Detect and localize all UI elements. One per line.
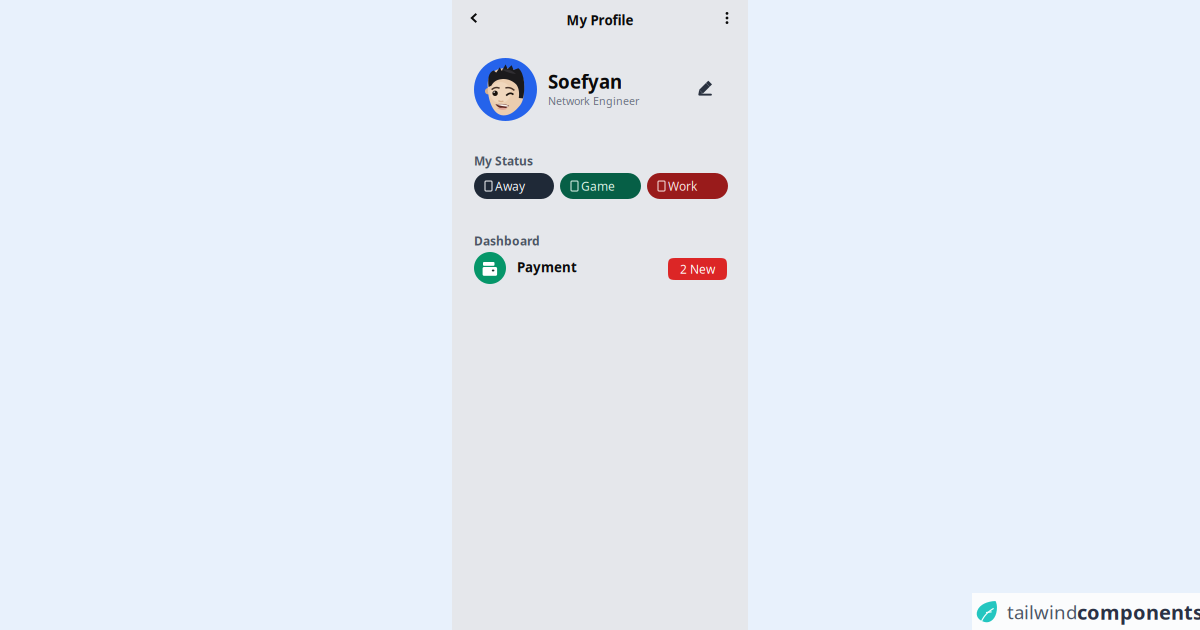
staticText: Game [581, 178, 615, 194]
button[interactable]: Back [460, 4, 488, 32]
button[interactable]: Work [647, 173, 728, 199]
button[interactable]: Payment [474, 252, 727, 284]
staticText: Payment [517, 258, 577, 276]
button[interactable]: More options [713, 4, 741, 32]
staticText: Work [668, 178, 697, 194]
button[interactable]: Edit profile [694, 75, 718, 99]
staticText: My Status [474, 153, 533, 169]
staticText: Network Engineer [548, 94, 639, 108]
staticText: components [1077, 599, 1200, 625]
staticText: 2 New [680, 261, 715, 277]
staticText: Dashboard [474, 233, 540, 249]
button[interactable]: Away [474, 173, 554, 199]
staticText: Away [495, 178, 525, 194]
staticText: My Profile [566, 11, 633, 29]
staticText: Soefyan [548, 69, 622, 94]
staticText: tailwind [1007, 600, 1077, 624]
button[interactable]: Game [560, 173, 641, 199]
